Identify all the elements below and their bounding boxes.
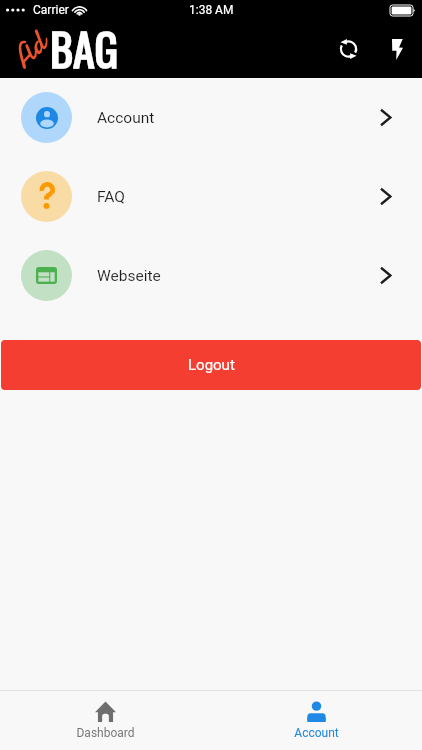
button[interactable]: Account	[211, 691, 422, 750]
button[interactable]: Account	[0, 78, 422, 157]
button[interactable]: Logout	[1, 340, 421, 390]
button[interactable]: Webseite	[0, 236, 422, 315]
staticText: Logout	[188, 356, 235, 374]
staticText: Account	[294, 726, 339, 740]
staticText: Account	[97, 109, 155, 127]
staticText: Dashboard	[76, 726, 135, 740]
staticText: Ad	[2, 23, 57, 78]
staticText: 1:38 AM	[189, 3, 234, 17]
staticText: FAQ	[97, 188, 125, 206]
staticText: BAG	[50, 16, 118, 74]
button[interactable]: FAQ	[0, 157, 422, 236]
staticText: Webseite	[97, 267, 161, 285]
button[interactable]: Flash	[377, 29, 417, 69]
button[interactable]: Dashboard	[0, 691, 211, 750]
button[interactable]: Refresh	[330, 27, 374, 71]
staticText: Carrier	[33, 3, 69, 17]
